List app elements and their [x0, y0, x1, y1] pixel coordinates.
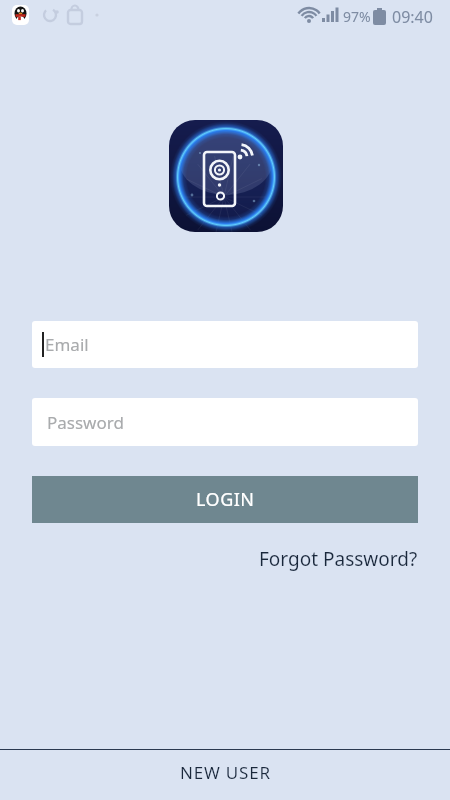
button[interactable]: NEW USER: [0, 747, 450, 797]
staticText: LOGIN: [196, 487, 255, 512]
staticText: Email: [45, 333, 89, 356]
button[interactable]: Email: [32, 321, 418, 368]
staticText: Forgot Password?: [259, 546, 418, 572]
button[interactable]: LOGIN: [32, 476, 418, 523]
staticText: 09:40: [392, 6, 433, 28]
button[interactable]: Forgot Password?: [250, 544, 418, 574]
staticText: 97%: [343, 7, 371, 26]
button[interactable]: Password: [32, 398, 418, 446]
staticText: Password: [47, 411, 124, 434]
staticText: NEW USER: [180, 761, 271, 784]
